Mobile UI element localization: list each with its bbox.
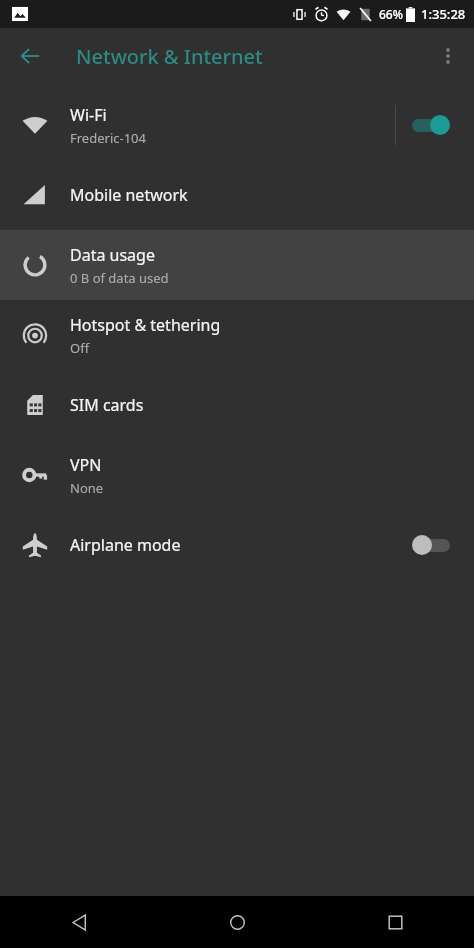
button[interactable]: VPN [0,440,474,510]
staticText: SIM cards [70,394,144,416]
button[interactable]: SIM cards [0,370,474,440]
button[interactable]: Back [0,896,158,948]
staticText: VPN [70,454,102,476]
staticText: 0 B of data used [70,269,169,287]
button[interactable]: More options [426,34,470,78]
staticText: 66% [379,6,403,22]
button[interactable]: Airplane mode [0,510,474,580]
button[interactable]: Recent apps [316,896,474,948]
staticText: Frederic-104 [70,129,146,147]
staticText: Network & Internet [76,43,263,70]
staticText: Airplane mode [70,534,181,556]
staticText: Off [70,339,90,357]
button[interactable]: Data usage [0,230,474,300]
button[interactable]: Navigate up [8,34,52,78]
button[interactable]: Airplane mode off [410,531,456,559]
button[interactable]: Home [158,896,316,948]
staticText: 1:35:28 [421,5,466,23]
staticText: Data usage [70,244,155,266]
button[interactable]: Wi-Fi [0,90,474,160]
staticText: None [70,479,104,497]
button[interactable]: Mobile network [0,160,474,230]
staticText: Hotspot & tethering [70,314,221,336]
staticText: Mobile network [70,184,188,206]
button[interactable]: Wi-Fi on [410,111,456,139]
button[interactable]: Hotspot & tethering [0,300,474,370]
staticText: Wi-Fi [70,104,107,126]
